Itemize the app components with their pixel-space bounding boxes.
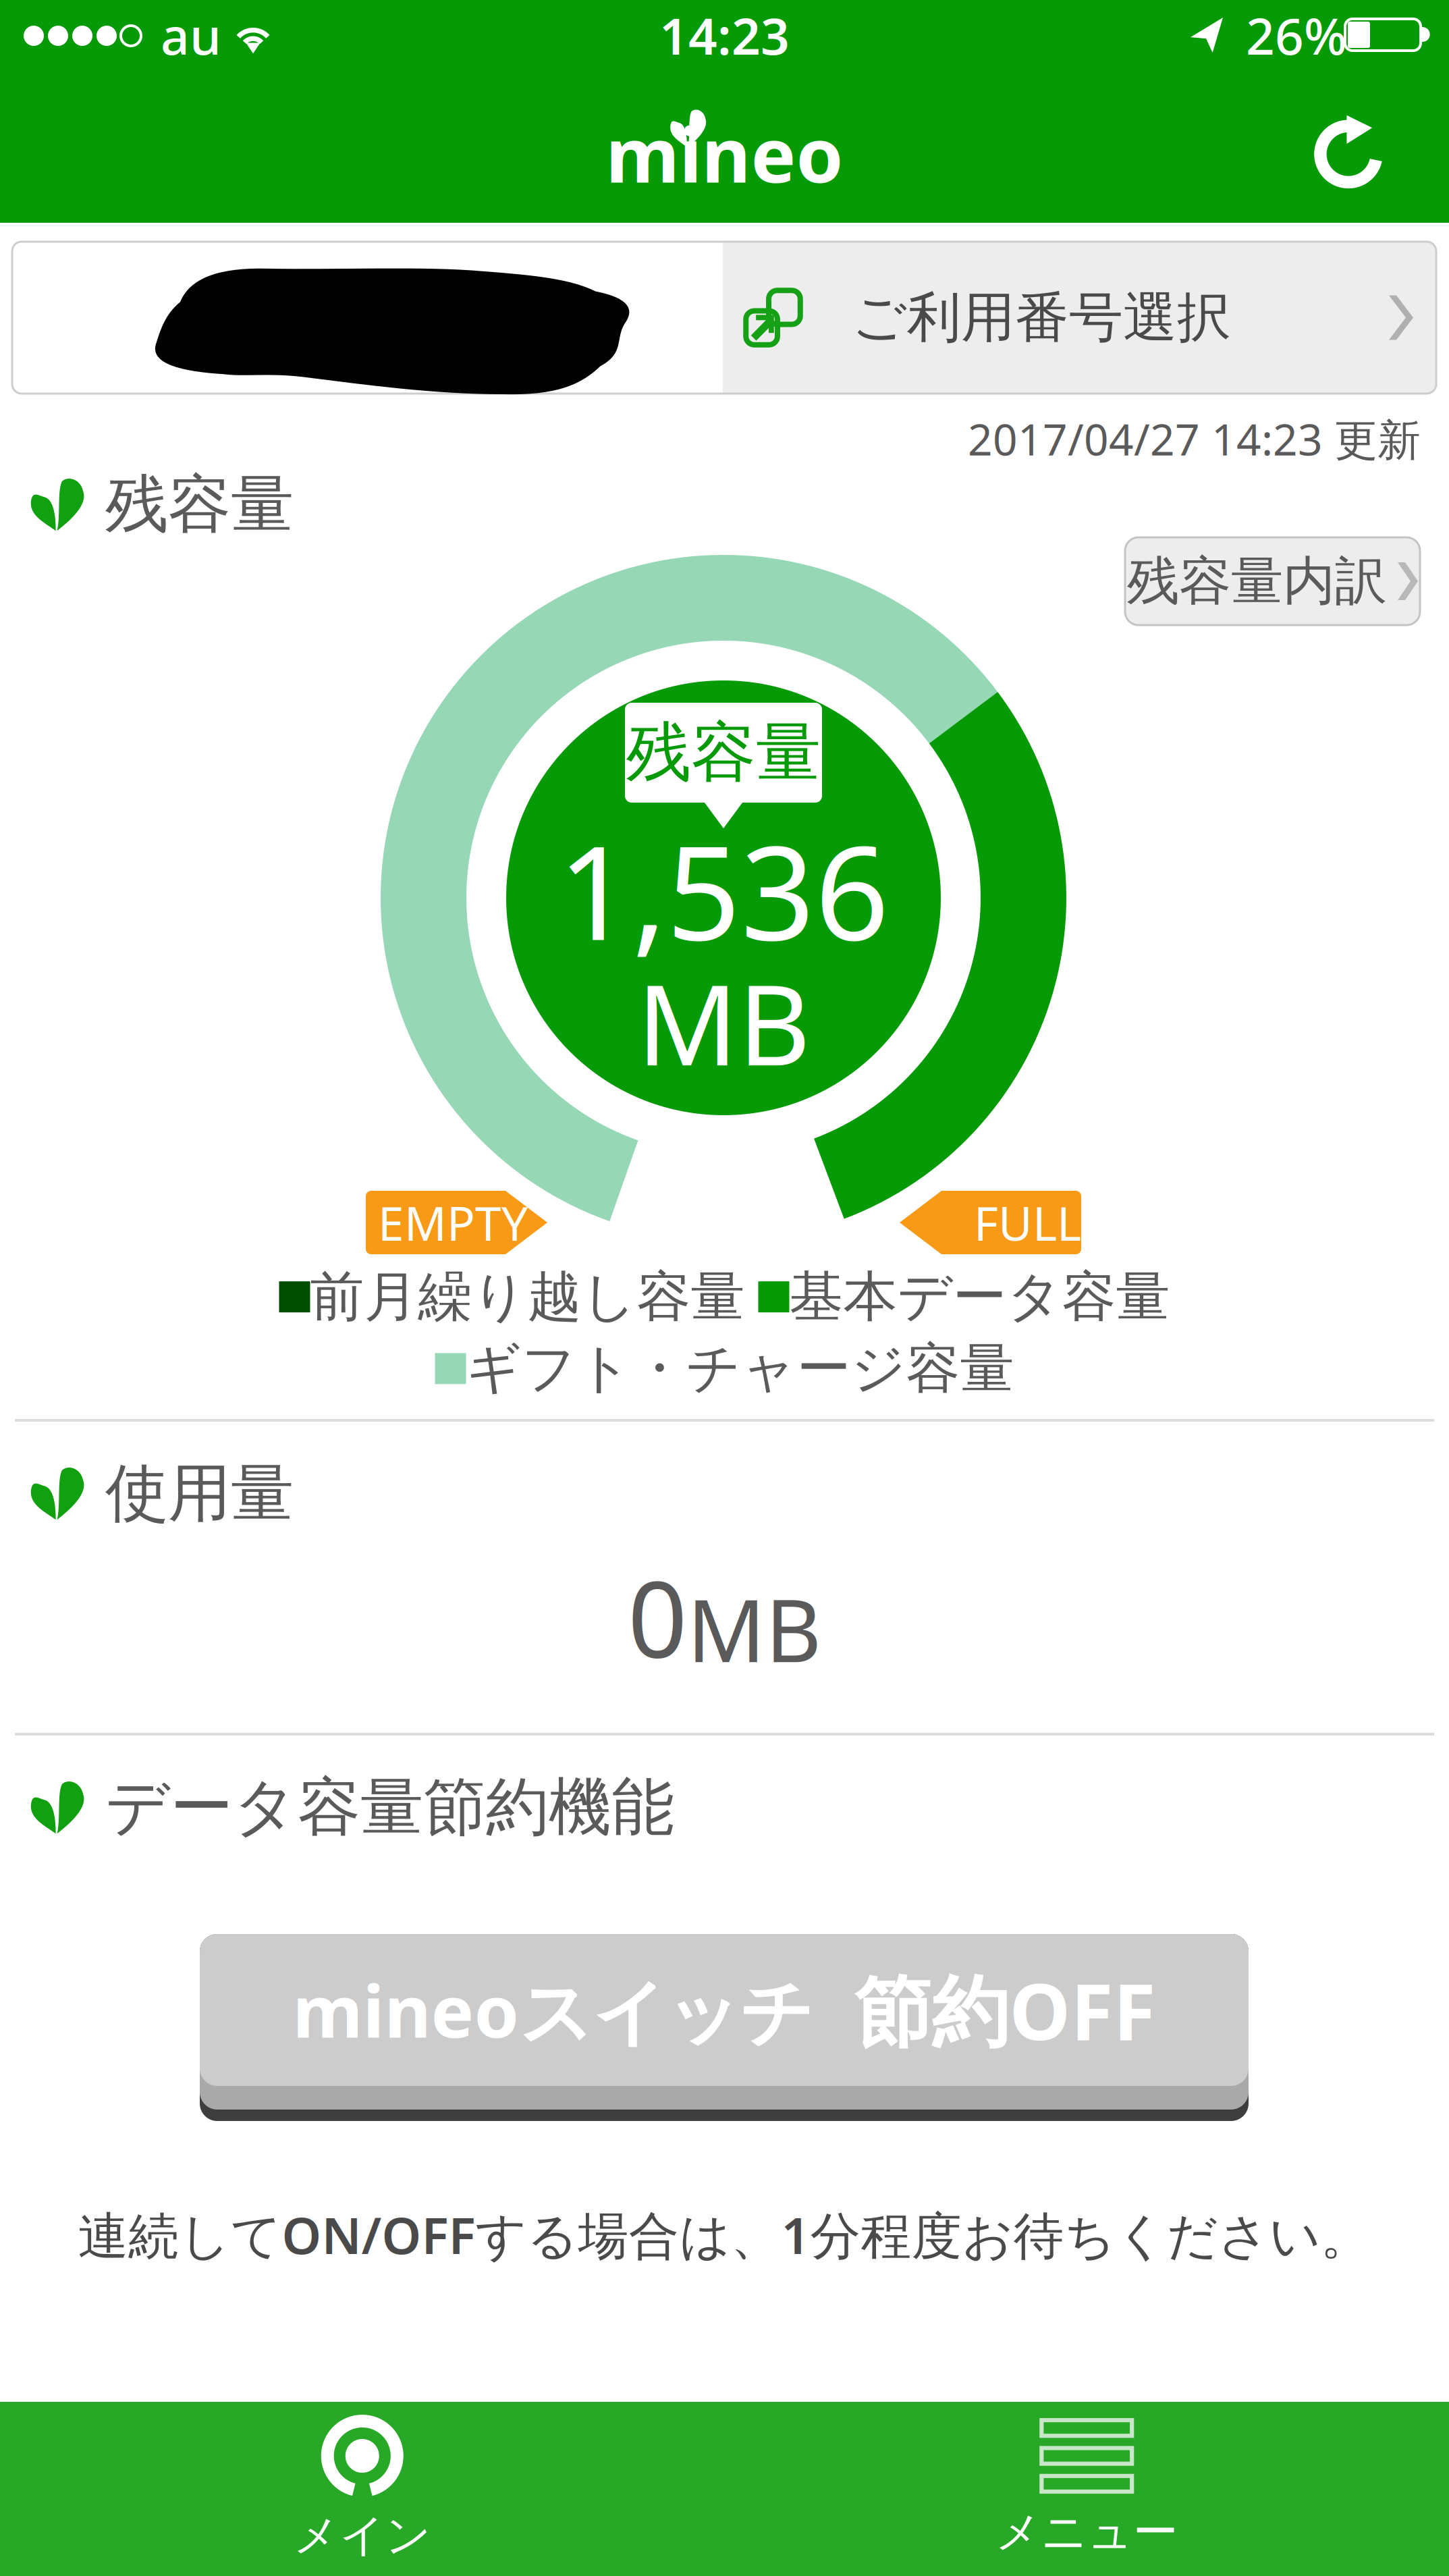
staticText: 2017/04/27 14:23 更新 — [968, 410, 1421, 467]
staticText: FULL — [974, 1191, 1081, 1254]
button[interactable]: 残容量内訳 — [1125, 537, 1420, 625]
staticText: メニュー — [995, 2505, 1178, 2560]
staticText: EMPTY — [378, 1191, 528, 1254]
staticText: 連続してON/OFFする場合は、1分程度お待ちください。 — [78, 2201, 1371, 2268]
staticText: MB — [687, 1571, 821, 1686]
staticText: 14:23 — [659, 2, 790, 69]
staticText: メイン — [293, 2508, 431, 2563]
staticText: 節約OFF — [854, 1959, 1156, 2061]
staticText: 基本データ容量 — [789, 1264, 1170, 1330]
staticText: 残容量 — [105, 466, 294, 543]
staticText: MB — [637, 948, 810, 1096]
staticText: データ容量節約機能 — [105, 1769, 674, 1846]
staticText: mineo — [606, 103, 843, 203]
staticText: 前月繰り越し容量 — [310, 1264, 745, 1330]
staticText: 26% — [1246, 2, 1347, 69]
staticText: 残容量 — [626, 713, 821, 792]
button[interactable]: メニュー — [724, 2402, 1449, 2576]
staticText: 0 — [628, 1547, 687, 1686]
staticText: ギフト・チャージ容量 — [466, 1335, 1014, 1402]
staticText: mineoスイッチ — [293, 1962, 814, 2058]
button[interactable]: mineoスイッチ — [200, 1934, 1249, 2121]
button[interactable]: Refresh — [1288, 83, 1409, 205]
staticText: au — [161, 2, 221, 69]
staticText: 残容量内訳 — [1127, 549, 1387, 613]
button[interactable]: ご利用番号選択 — [12, 242, 1436, 394]
staticText: 使用量 — [105, 1455, 294, 1532]
button[interactable]: メイン — [0, 2402, 724, 2576]
staticText: ご利用番号選択 — [852, 284, 1231, 351]
staticText: 1,536 — [558, 804, 889, 976]
